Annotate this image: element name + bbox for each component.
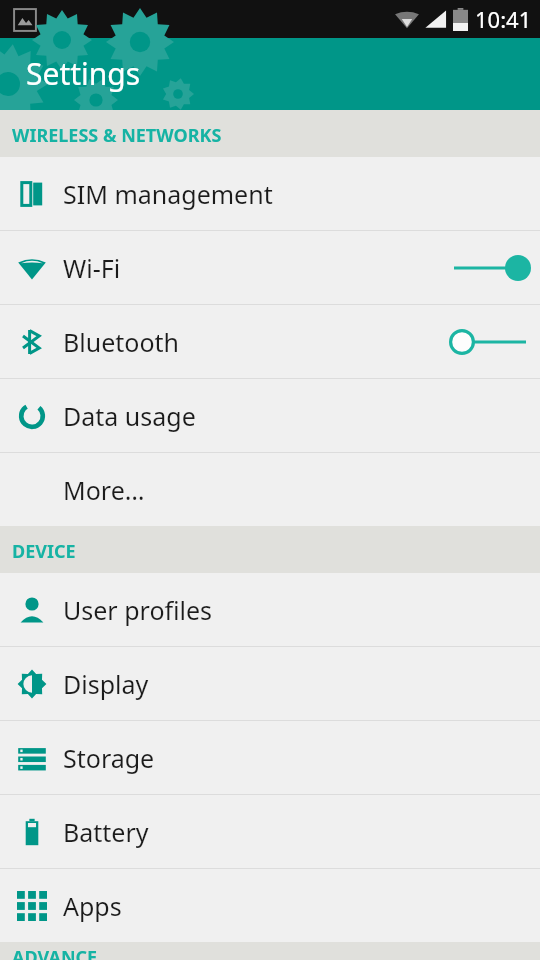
button[interactable]: Bluetooth off [440,305,540,378]
staticText: SIM management [63,177,273,211]
staticText: ADVANCE [12,945,98,960]
staticText: Apps [63,889,122,923]
staticText: Wi-Fi [63,251,121,285]
staticText: Settings [26,53,141,94]
button[interactable]: User profiles [0,573,540,646]
button[interactable]: Wi-Fi on [440,231,540,304]
button[interactable]: Bluetooth [0,305,540,378]
button[interactable]: Data usage [0,379,540,452]
staticText: User profiles [63,593,213,627]
button[interactable]: More… [0,453,540,526]
staticText: More… [63,473,145,507]
button[interactable]: Display [0,647,540,720]
staticText: WIRELESS & NETWORKS [12,123,222,148]
button[interactable]: Wi-Fi [0,231,540,304]
button[interactable]: SIM management [0,157,540,230]
button[interactable]: Storage [0,721,540,794]
staticText: 10:41 [475,4,532,34]
staticText: Battery [63,815,149,849]
staticText: DEVICE [12,539,76,564]
staticText: Storage [63,741,155,775]
staticText: Bluetooth [63,325,180,359]
button[interactable]: Apps [0,869,540,942]
button[interactable]: Battery [0,795,540,868]
staticText: Data usage [63,399,196,433]
staticText: Display [63,667,149,701]
